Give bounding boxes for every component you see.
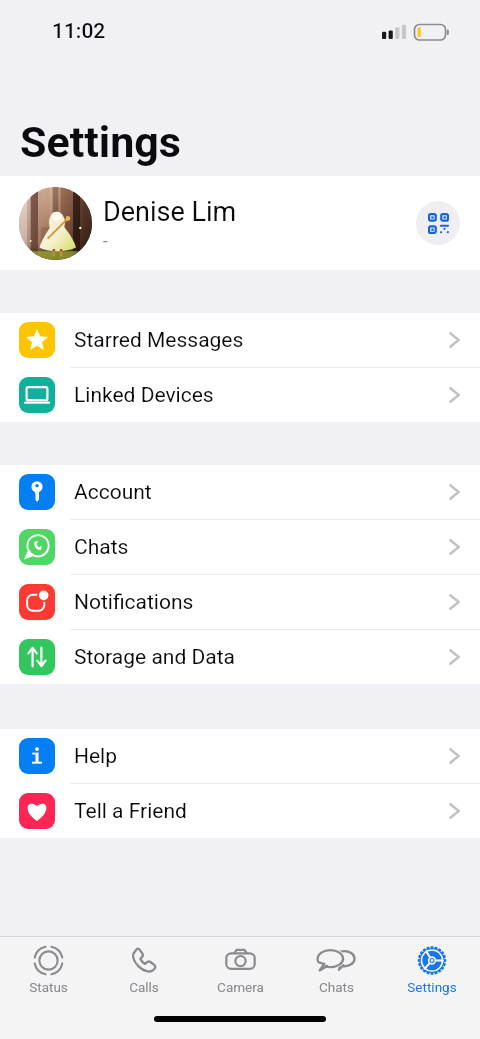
button[interactable]: Chats bbox=[0, 520, 480, 574]
staticText: Tell a Friend bbox=[74, 799, 187, 824]
staticText: Camera bbox=[217, 979, 264, 995]
staticText: Settings bbox=[407, 979, 457, 995]
staticText: Linked Devices bbox=[74, 383, 214, 408]
button[interactable]: Linked Devices bbox=[0, 368, 480, 422]
staticText: Calls bbox=[129, 979, 159, 995]
staticText: Chats bbox=[319, 979, 354, 995]
staticText: Help bbox=[74, 744, 118, 769]
button[interactable]: Denise Lim bbox=[0, 176, 480, 270]
button[interactable]: Status bbox=[0, 937, 96, 995]
button[interactable]: Tell a Friend bbox=[0, 784, 480, 838]
button[interactable]: Camera bbox=[192, 937, 288, 995]
button[interactable]: Show QR code bbox=[416, 201, 460, 245]
staticText: Chats bbox=[74, 535, 129, 560]
button[interactable]: Storage and Data bbox=[0, 630, 480, 684]
button[interactable]: Notifications bbox=[0, 575, 480, 629]
button[interactable]: Account bbox=[0, 465, 480, 519]
button[interactable]: Calls bbox=[96, 937, 192, 995]
button[interactable]: Settings bbox=[384, 937, 480, 995]
button[interactable]: Chats bbox=[288, 937, 384, 995]
staticText: Starred Messages bbox=[74, 328, 244, 353]
staticText: Denise Lim bbox=[103, 196, 237, 228]
staticText: Settings bbox=[20, 117, 181, 167]
staticText: Status bbox=[29, 979, 68, 995]
staticText: - bbox=[103, 231, 108, 251]
staticText: Notifications bbox=[74, 590, 194, 615]
staticText: 11:02 bbox=[52, 19, 106, 44]
button[interactable]: Starred Messages bbox=[0, 313, 480, 367]
staticText: Account bbox=[74, 480, 152, 505]
button[interactable]: Help bbox=[0, 729, 480, 783]
staticText: Storage and Data bbox=[74, 645, 235, 670]
